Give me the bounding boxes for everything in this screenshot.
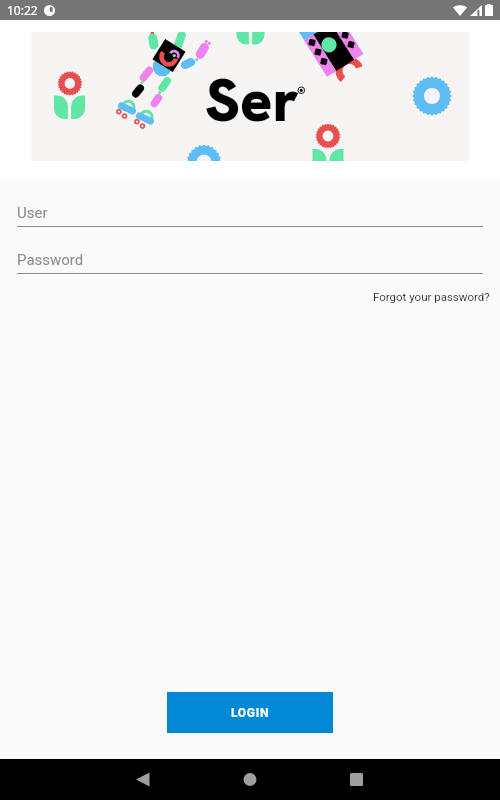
button[interactable]: LOGIN bbox=[167, 692, 333, 733]
button[interactable]: Home bbox=[230, 759, 270, 800]
staticText: LOGIN bbox=[231, 706, 270, 720]
staticText: 10:22 bbox=[7, 2, 38, 18]
button[interactable]: Back bbox=[123, 759, 163, 800]
staticText: Password bbox=[17, 251, 84, 269]
button[interactable]: Forgot your password? bbox=[365, 285, 498, 308]
button[interactable]: User bbox=[17, 202, 483, 227]
button[interactable]: Password bbox=[17, 249, 483, 274]
staticText: User bbox=[17, 204, 48, 222]
button[interactable]: Recent apps bbox=[337, 759, 377, 800]
staticText: Forgot your password? bbox=[373, 290, 490, 303]
staticText: Ser bbox=[205, 61, 299, 139]
